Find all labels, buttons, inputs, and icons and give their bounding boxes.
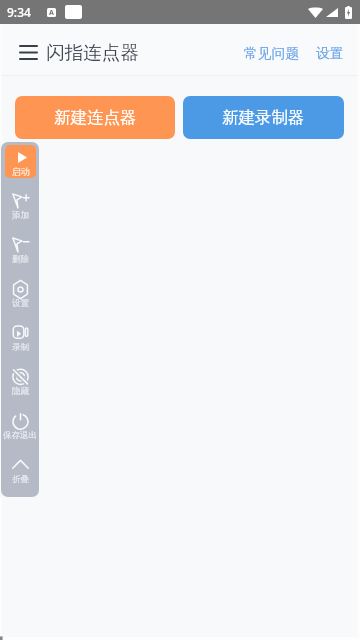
staticText: 新建录制器 — [222, 107, 305, 128]
button[interactable]: 折叠 — [1, 457, 39, 485]
staticText: 闪指连点器 — [46, 41, 139, 64]
button[interactable]: 设置 — [311, 37, 349, 70]
staticText: 删除 — [12, 254, 29, 265]
button[interactable]: Menu — [16, 40, 40, 64]
staticText: 录制 — [12, 342, 29, 353]
button[interactable]: 删除 — [1, 237, 39, 265]
staticText: 添加 — [12, 210, 29, 221]
button[interactable]: 添加 — [1, 193, 39, 221]
staticText: 设置 — [12, 298, 29, 309]
button[interactable]: 新建连点器 — [15, 96, 175, 139]
staticText: 常见问题 — [244, 45, 300, 62]
button[interactable]: 启动 — [5, 145, 36, 178]
staticText: A — [49, 8, 54, 17]
button[interactable]: 保存退出 — [1, 413, 39, 441]
button[interactable]: 设置 — [1, 281, 39, 309]
button[interactable]: 录制 — [1, 325, 39, 353]
staticText: 隐藏 — [12, 386, 29, 397]
staticText: 保存退出 — [3, 430, 37, 441]
button[interactable]: 常见问题 — [239, 37, 305, 70]
button[interactable]: 隐藏 — [1, 369, 39, 397]
button[interactable]: 新建录制器 — [183, 96, 344, 139]
staticText: 折叠 — [12, 474, 29, 485]
staticText: 设置 — [316, 45, 344, 62]
staticText: 9:34 — [7, 4, 31, 20]
staticText: 新建连点器 — [54, 107, 137, 128]
staticText: 启动 — [5, 166, 36, 177]
